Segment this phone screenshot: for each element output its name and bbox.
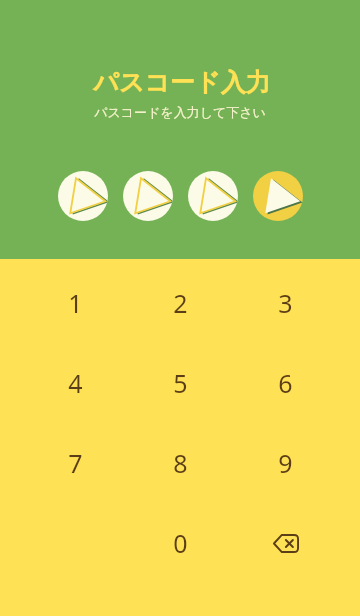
- button[interactable]: 3: [233, 263, 338, 343]
- button[interactable]: Delete: [233, 503, 338, 583]
- staticText: 8: [173, 446, 188, 480]
- staticText: 1: [68, 286, 83, 320]
- staticText: パスコードを入力して下さい: [94, 104, 266, 120]
- button[interactable]: 9: [233, 423, 338, 503]
- staticText: 9: [278, 446, 293, 480]
- button[interactable]: 1: [22, 263, 128, 343]
- other: Passcode progress, 3 of 4 entered: [0, 171, 360, 221]
- staticText: 5: [173, 366, 188, 400]
- staticText: 7: [68, 446, 83, 480]
- staticText: 0: [173, 526, 188, 560]
- staticText: 3: [278, 286, 293, 320]
- staticText: 6: [278, 366, 293, 400]
- button[interactable]: 8: [128, 423, 233, 503]
- button[interactable]: 6: [233, 343, 338, 423]
- staticText: 4: [68, 366, 83, 400]
- button[interactable]: 4: [22, 343, 128, 423]
- staticText: 2: [173, 286, 188, 320]
- button[interactable]: 0: [128, 503, 233, 583]
- button[interactable]: 5: [128, 343, 233, 423]
- button[interactable]: 2: [128, 263, 233, 343]
- button[interactable]: 7: [22, 423, 128, 503]
- staticText: パスコード入力: [93, 67, 271, 98]
